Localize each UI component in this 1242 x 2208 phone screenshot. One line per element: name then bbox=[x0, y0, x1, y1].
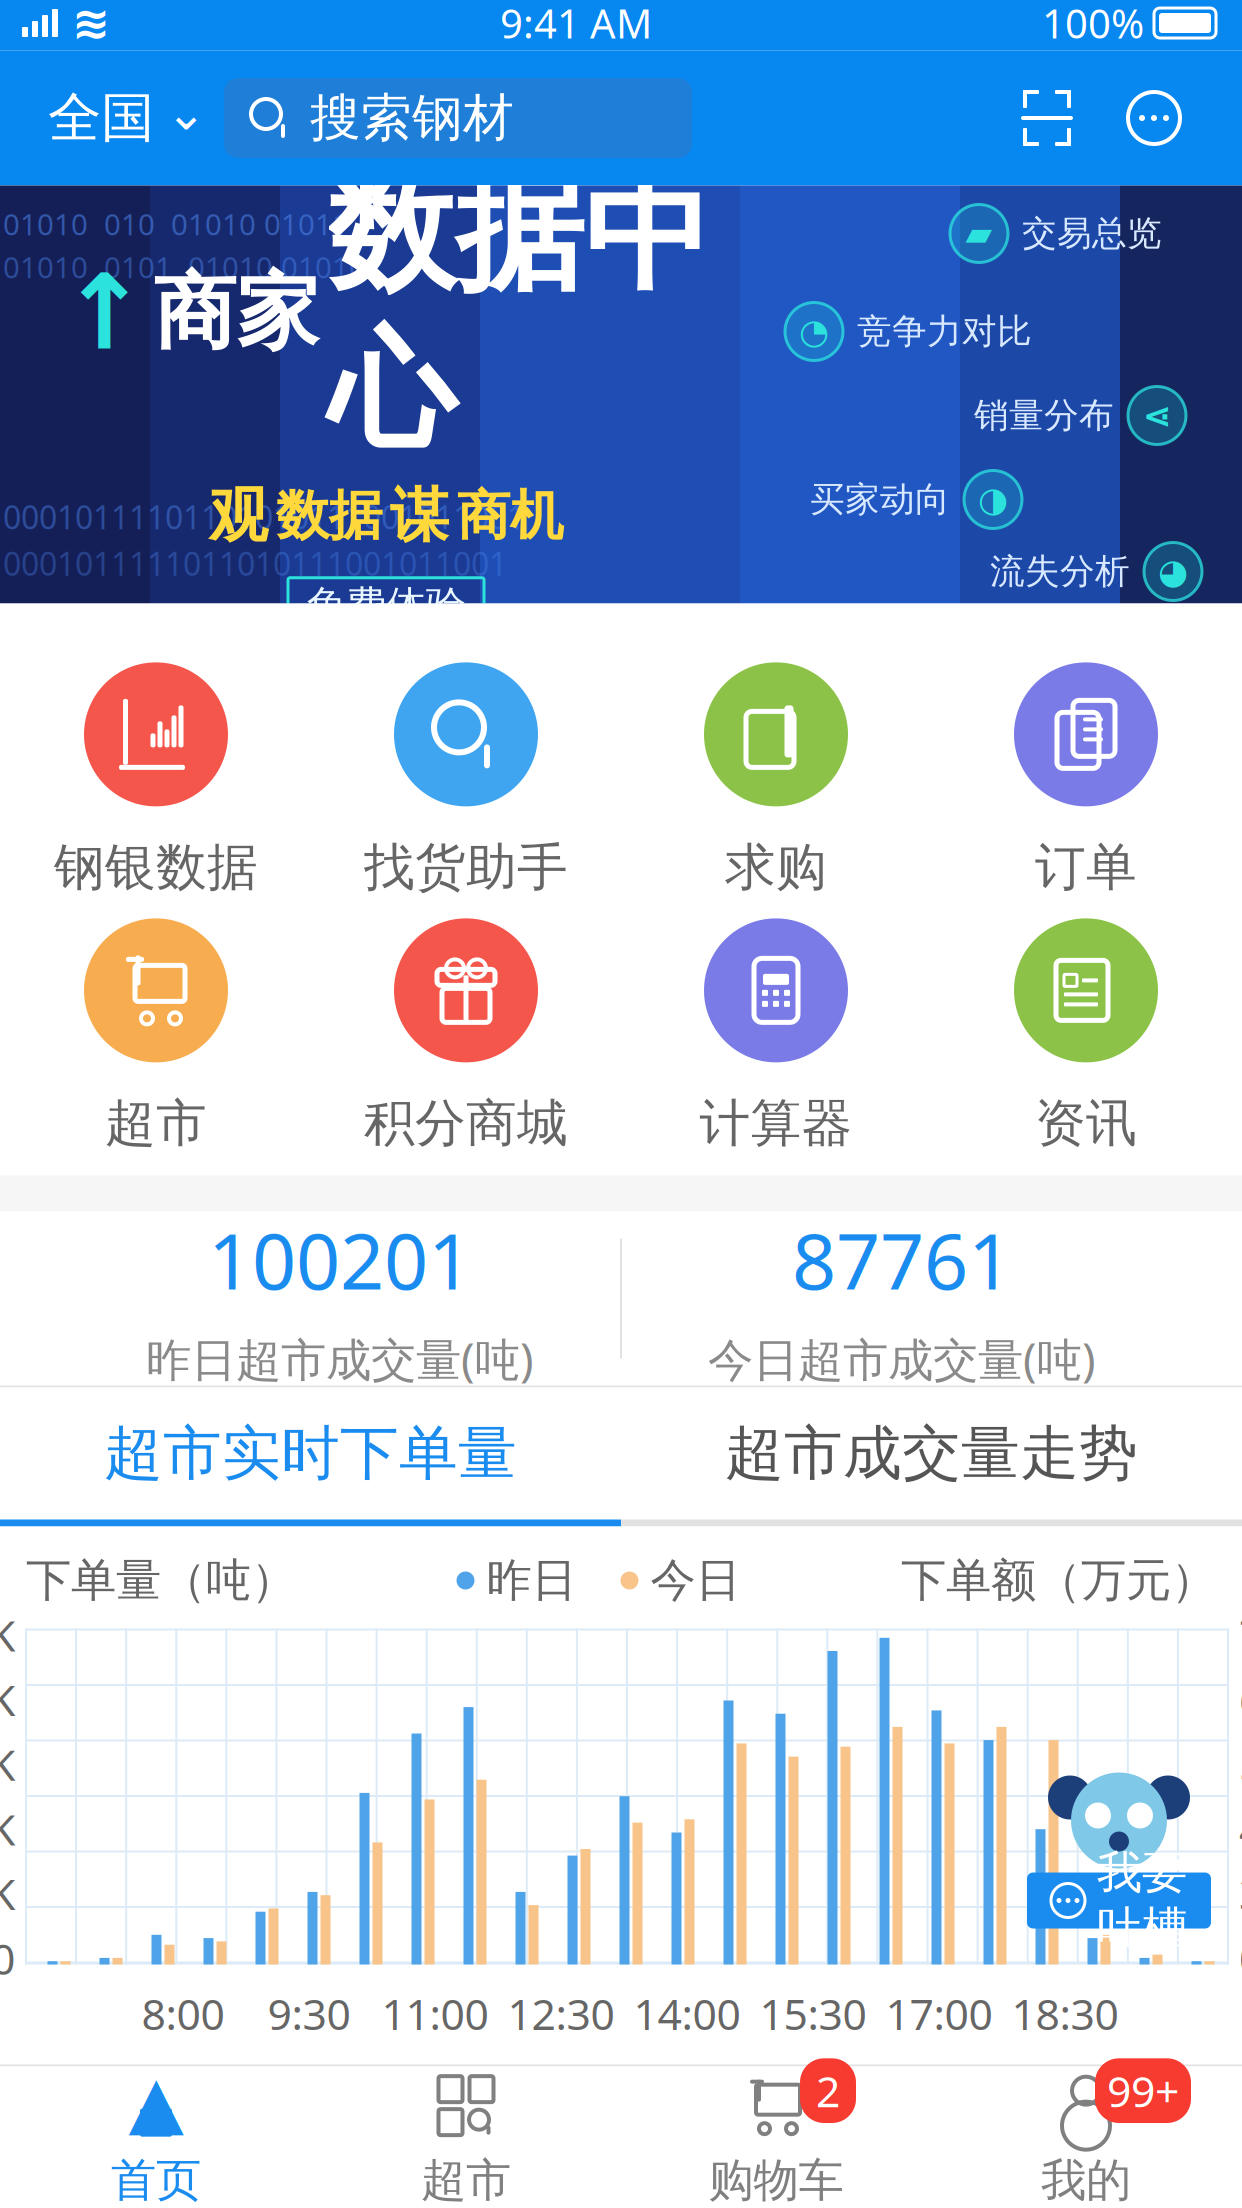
staticText: 资讯 bbox=[1035, 1092, 1137, 1155]
staticText: ◑ bbox=[978, 480, 1008, 519]
staticText: 订单 bbox=[1035, 836, 1137, 899]
button[interactable]: ▲ bbox=[1, 2065, 311, 2208]
staticText: 商家 bbox=[153, 262, 319, 363]
staticText: 竞争力对比 bbox=[857, 310, 1032, 353]
staticText: 流失分析 bbox=[990, 550, 1130, 593]
staticText: ◔ bbox=[799, 312, 829, 351]
staticText: ↑ bbox=[60, 253, 147, 371]
staticText: 购物车 bbox=[708, 2153, 843, 2208]
button[interactable]: 超市实时下单量 bbox=[0, 1387, 621, 1519]
staticText: 01010 0101 01010 01010 bbox=[3, 247, 366, 286]
staticText: 首页 bbox=[111, 2153, 201, 2208]
staticText: 8:00 bbox=[141, 1985, 224, 2042]
button[interactable]: 找货助手 bbox=[311, 664, 621, 896]
staticText: 6K bbox=[1239, 1671, 1242, 1728]
staticText: 今日超市成交量(吨) bbox=[708, 1329, 1096, 1389]
staticText: 9:30 bbox=[267, 1985, 350, 2042]
staticText: 6K bbox=[0, 1800, 15, 1857]
button[interactable]: 消息 bbox=[1102, 73, 1206, 163]
staticText: 积分商城 bbox=[364, 1092, 568, 1155]
staticText: 9:41 AM bbox=[500, 0, 652, 49]
staticText: 交易总览 bbox=[1022, 212, 1162, 255]
staticText: 0001011111011010111001011001 bbox=[3, 542, 507, 584]
staticText: 00010111101101010111001011001 bbox=[3, 495, 525, 538]
button[interactable]: 搜索钢材 bbox=[224, 78, 692, 158]
staticText: 钢银数据 bbox=[54, 836, 258, 899]
staticText: 7K bbox=[1239, 1606, 1242, 1663]
staticText: 数据 bbox=[276, 483, 382, 548]
staticText: 15K bbox=[0, 1606, 15, 1663]
staticText: 买家动向 bbox=[810, 478, 950, 521]
staticText: 99+ bbox=[1107, 2062, 1179, 2119]
staticText: 超市实时下单量 bbox=[104, 1417, 517, 1490]
button[interactable]: 积分商城 bbox=[311, 920, 621, 1152]
staticText: ◕ bbox=[1158, 552, 1188, 591]
staticText: 14:00 bbox=[633, 1985, 740, 2042]
staticText: 超市成交量走势 bbox=[725, 1417, 1138, 1490]
staticText: 今日 bbox=[650, 1553, 740, 1608]
staticText: 商机 bbox=[457, 483, 563, 548]
staticText: 100201 bbox=[208, 1208, 472, 1311]
staticText: ▰ bbox=[965, 214, 992, 253]
button[interactable]: 超市 bbox=[1, 920, 311, 1152]
staticText: 我的 bbox=[1041, 2153, 1131, 2208]
button[interactable]: 资讯 bbox=[931, 920, 1241, 1152]
button[interactable]: 扫一扫 bbox=[992, 73, 1102, 163]
staticText: 01010 010 01010 01011 bbox=[3, 204, 349, 243]
button[interactable]: 99+ bbox=[931, 2065, 1241, 2208]
staticText: 全国 bbox=[48, 85, 154, 151]
staticText: 谋 bbox=[390, 480, 449, 552]
staticText: 0 bbox=[0, 1930, 15, 1986]
staticText: 超市 bbox=[105, 1092, 207, 1155]
staticText: ⋖ bbox=[1142, 396, 1171, 435]
button[interactable]: 免费体验 bbox=[288, 578, 484, 634]
staticText: 3K bbox=[1239, 1865, 1242, 1922]
button[interactable]: 钢银数据 bbox=[1, 664, 311, 896]
staticText: 100% bbox=[1042, 0, 1144, 49]
staticText: 17:00 bbox=[885, 1985, 992, 2042]
staticText: 12K bbox=[0, 1671, 15, 1728]
button[interactable]: 全国 bbox=[0, 73, 224, 163]
staticText: 11:00 bbox=[381, 1985, 488, 2042]
staticText: 0 bbox=[1239, 1930, 1242, 1986]
button[interactable]: 2 bbox=[621, 2065, 931, 2208]
staticText: 3K bbox=[0, 1865, 15, 1922]
staticText: 找货助手 bbox=[364, 836, 568, 899]
staticText: ▲ bbox=[128, 2061, 183, 2142]
staticText: 免费体验 bbox=[306, 581, 466, 630]
button[interactable]: 订单 bbox=[931, 664, 1241, 896]
staticText: 9K bbox=[0, 1736, 15, 1792]
staticText: ≋ bbox=[72, 0, 110, 49]
button[interactable]: 超市成交量走势 bbox=[621, 1387, 1242, 1519]
staticText: 计算器 bbox=[699, 1092, 852, 1155]
staticText: 5K bbox=[1239, 1736, 1242, 1792]
staticText: 下单额（万元） bbox=[901, 1553, 1216, 1608]
button[interactable]: 计算器 bbox=[621, 920, 931, 1152]
staticText: 15:30 bbox=[759, 1985, 866, 2042]
staticText: 搜索钢材 bbox=[310, 87, 514, 149]
staticText: 求购 bbox=[725, 836, 827, 899]
staticText: 昨日超市成交量(吨) bbox=[146, 1329, 534, 1389]
staticText: 87761 bbox=[792, 1208, 1012, 1311]
staticText: 2 bbox=[816, 2062, 840, 2119]
button[interactable]: 求购 bbox=[621, 664, 931, 896]
staticText: 数据中心 bbox=[327, 155, 711, 470]
staticText: 观 bbox=[209, 480, 268, 552]
staticText: 销量分布 bbox=[974, 394, 1114, 437]
staticText: 4K bbox=[1239, 1800, 1242, 1857]
staticText: 下单量（吨） bbox=[26, 1553, 296, 1608]
button[interactable]: 我要吐槽 bbox=[1024, 1766, 1214, 1930]
staticText: ⌄ bbox=[166, 86, 206, 140]
staticText: 12:30 bbox=[507, 1985, 614, 2042]
staticText: 18:30 bbox=[1011, 1985, 1118, 2042]
button[interactable]: 超市 bbox=[311, 2065, 621, 2208]
staticText: 超市 bbox=[421, 2153, 511, 2208]
staticText: 昨日 bbox=[486, 1553, 576, 1608]
staticText: 我要吐槽 bbox=[1097, 1845, 1187, 1956]
